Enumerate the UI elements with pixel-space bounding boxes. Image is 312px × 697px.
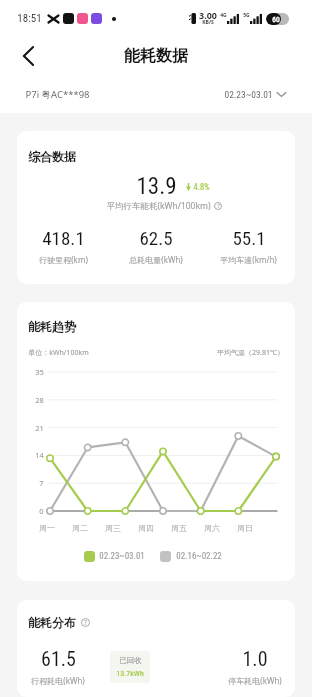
staticText: 平均车速(km/h) [220,254,277,265]
staticText: 停车耗电(kWh) [228,675,282,686]
staticText: 14 [35,450,44,460]
staticText: 平均行车能耗(kWh/100km) [106,200,211,212]
staticText: 周五 [171,523,187,533]
staticText: 单位：kWh/100km [28,348,89,358]
staticText: 能耗数据 [124,46,188,66]
staticText: 418.1 [42,227,85,249]
staticText: 35 [35,367,44,377]
staticText: 18:51 [17,12,42,25]
staticText: ? [84,618,87,627]
staticText: 61.5 [41,647,76,670]
staticText: KB/S [202,19,214,26]
staticText: 02.16~02.22 [176,551,222,562]
staticText: 62.5 [139,227,173,249]
staticText: 行程耗电(kWh) [31,675,85,686]
staticText: 平均气温（29.81℃） [217,348,284,358]
staticText: 4.8% [193,182,210,192]
staticText: 能耗趋势 [28,319,76,334]
staticText: 55.1 [232,227,266,249]
staticText: 28 [35,395,44,405]
staticText: 21 [35,423,44,433]
staticText: 5G [243,12,250,19]
button[interactable]: 02.23~03.01 [224,89,286,100]
staticText: 02.23~03.01 [224,89,273,100]
staticText: 周三 [105,523,121,533]
staticText: 7 [39,478,44,488]
staticText: 周二 [72,523,88,533]
staticText: 已回收 [119,656,142,665]
staticText: 0 [39,506,44,516]
button[interactable]: Back [12,40,44,72]
staticText: 4G [220,12,227,19]
staticText: P7i 粤AC***98 [25,88,90,101]
staticText: 周四 [138,523,154,533]
staticText: 能耗分布 [28,615,76,630]
staticText: 02.23~03.01 [99,551,145,562]
staticText: 13.7kWh [116,669,144,678]
staticText: 周日 [237,523,253,533]
staticText: 3.00 [199,9,217,21]
staticText: 60 [272,15,280,24]
staticText: 1.0 [242,647,268,670]
staticText: 综合数据 [28,149,76,164]
staticText: 总耗电量(kWh) [129,254,183,265]
staticText: 行驶里程(km) [39,254,88,265]
staticText: 周一 [39,523,55,533]
staticText: 13.9 [136,173,177,194]
staticText: ? [217,202,220,210]
staticText: 周六 [204,523,220,533]
